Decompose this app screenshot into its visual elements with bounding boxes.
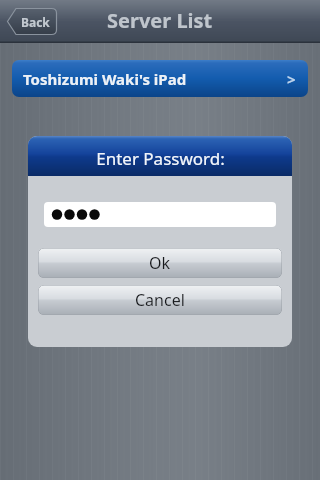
staticText: Toshizumi Waki's iPad [23, 69, 187, 89]
staticText: Enter Password: [96, 147, 225, 170]
button[interactable]: Cancel [38, 285, 282, 315]
staticText: Cancel [135, 289, 185, 311]
staticText: > [287, 69, 296, 89]
staticText: Ok [149, 252, 171, 274]
button[interactable]: Ok [38, 248, 282, 278]
staticText: Server List [107, 7, 213, 34]
button[interactable]: Toshizumi Waki's iPad [12, 60, 308, 97]
button[interactable]: Back [7, 8, 57, 35]
button[interactable] [44, 202, 276, 227]
staticText: Back [21, 14, 50, 30]
